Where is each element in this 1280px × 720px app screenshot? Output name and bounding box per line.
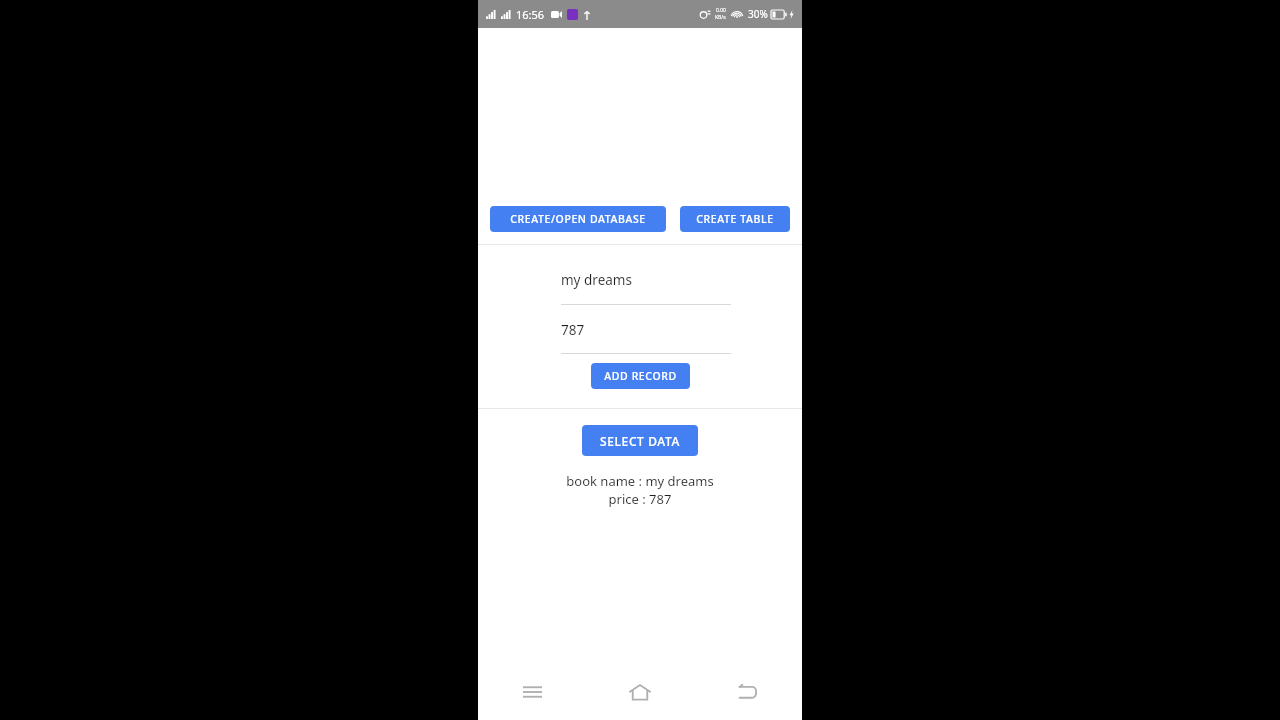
button[interactable]: ADD RECORD <box>591 363 690 389</box>
staticText: 30% <box>748 7 768 21</box>
staticText: my dreams <box>561 271 632 289</box>
button[interactable]: CREATE TABLE <box>680 206 790 232</box>
button[interactable]: Recent apps <box>478 670 586 714</box>
button[interactable]: 787 <box>561 318 731 342</box>
staticText: ADD RECORD <box>604 369 677 383</box>
button[interactable]: Back <box>694 670 802 714</box>
staticText: CREATE/OPEN DATABASE <box>510 212 646 226</box>
staticText: CREATE TABLE <box>696 212 774 226</box>
button[interactable]: Home <box>586 670 694 714</box>
staticText: KB/s <box>715 14 726 21</box>
button[interactable]: SELECT DATA <box>582 425 698 456</box>
button[interactable]: CREATE/OPEN DATABASE <box>490 206 666 232</box>
button[interactable]: my dreams <box>561 267 731 293</box>
staticText: SELECT DATA <box>600 433 680 449</box>
staticText: book name : my dreams price : 787 <box>478 472 802 508</box>
staticText: 0.00 <box>716 7 726 14</box>
staticText: 16:56 <box>516 7 545 22</box>
staticText: 787 <box>561 321 585 339</box>
